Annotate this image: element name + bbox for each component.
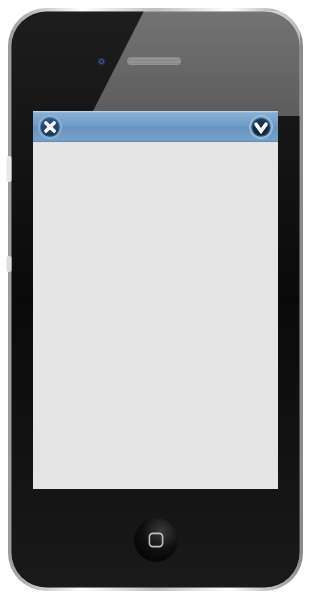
button[interactable]: Expand bbox=[249, 115, 273, 139]
button[interactable]: Close bbox=[38, 115, 62, 139]
button[interactable]: Home bbox=[134, 518, 178, 562]
